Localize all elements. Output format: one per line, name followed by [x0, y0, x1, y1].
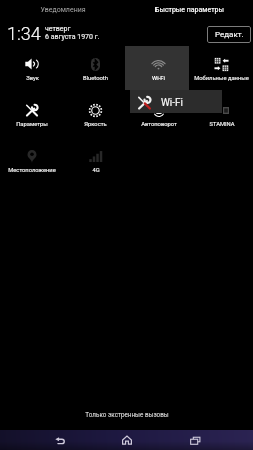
button[interactable]: Звук	[0, 46, 64, 92]
staticText: Bluetooth	[83, 75, 108, 82]
staticText: Звук	[26, 75, 39, 82]
button[interactable]: Уведомления	[0, 0, 126, 20]
button[interactable]: Местоположение	[0, 138, 64, 184]
button[interactable]: Recents	[179, 430, 211, 450]
button[interactable]: Мобильные данные	[190, 46, 253, 92]
staticText: Параметры	[16, 121, 48, 128]
staticText: Автоповорот	[141, 121, 177, 128]
button[interactable]: Wi-Fi	[130, 90, 222, 113]
button[interactable]: Home	[111, 430, 143, 450]
staticText: 1:34	[7, 23, 41, 44]
button[interactable]: Back	[43, 430, 75, 450]
staticText: 4G	[92, 167, 100, 174]
button[interactable]: Параметры	[0, 92, 64, 138]
button[interactable]: STAMINA	[190, 92, 253, 138]
button[interactable]: 4G	[64, 138, 127, 184]
staticText: Уведомления	[40, 6, 86, 14]
staticText: Редакт.	[215, 30, 244, 39]
button[interactable]: Автоповорот	[127, 92, 190, 138]
staticText: Местоположение	[8, 167, 56, 174]
staticText: Быстрые параметры	[155, 6, 224, 14]
staticText: Мобильные данные	[194, 75, 249, 82]
staticText: четверг	[45, 25, 71, 33]
staticText: STAMINA	[209, 121, 235, 128]
staticText: Яркость	[84, 121, 107, 128]
staticText: 6 августа 1970 г.	[45, 33, 100, 41]
staticText: Wi-Fi	[152, 75, 165, 82]
staticText: Wi-Fi	[161, 97, 184, 109]
button[interactable]: Wi-Fi	[127, 46, 190, 92]
staticText: Только экстренные вызовы	[85, 411, 169, 418]
button[interactable]: Редакт.	[207, 26, 251, 43]
button[interactable]: Яркость	[64, 92, 127, 138]
button[interactable]: Быстрые параметры	[126, 0, 253, 20]
button[interactable]: Bluetooth	[64, 46, 127, 92]
